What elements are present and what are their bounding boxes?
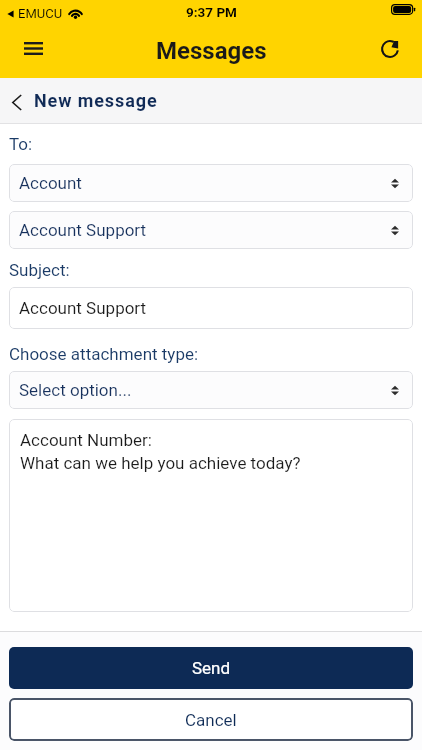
staticText: Select option... xyxy=(19,380,132,400)
button[interactable]: Account xyxy=(9,164,413,202)
button[interactable]: New message xyxy=(12,90,158,111)
button[interactable]: Menu xyxy=(13,28,53,68)
staticText: New message xyxy=(34,90,158,111)
staticText: Account Number: xyxy=(20,430,152,450)
staticText: Account xyxy=(19,173,82,193)
staticText: 9:37 PM xyxy=(186,4,237,20)
staticText: Account Support xyxy=(19,220,147,240)
staticText: What can we help you achieve today? xyxy=(20,453,301,473)
staticText: Send xyxy=(192,658,231,678)
staticText: To: xyxy=(9,134,33,154)
button[interactable]: Select option... xyxy=(9,371,413,409)
button[interactable]: Account Number: xyxy=(9,419,413,612)
staticText: Subject: xyxy=(9,260,70,280)
button[interactable]: Account Support xyxy=(9,287,413,329)
staticText: EMUCU xyxy=(18,6,63,21)
staticText: Cancel xyxy=(185,710,237,730)
button[interactable]: Send xyxy=(9,647,413,689)
staticText: Messages xyxy=(156,37,267,65)
staticText: Choose attachment type: xyxy=(9,344,199,364)
button[interactable]: Account Support xyxy=(9,211,413,249)
button[interactable]: Cancel xyxy=(9,698,413,741)
button[interactable]: Refresh xyxy=(370,29,410,69)
staticText: Account Support xyxy=(19,298,147,318)
